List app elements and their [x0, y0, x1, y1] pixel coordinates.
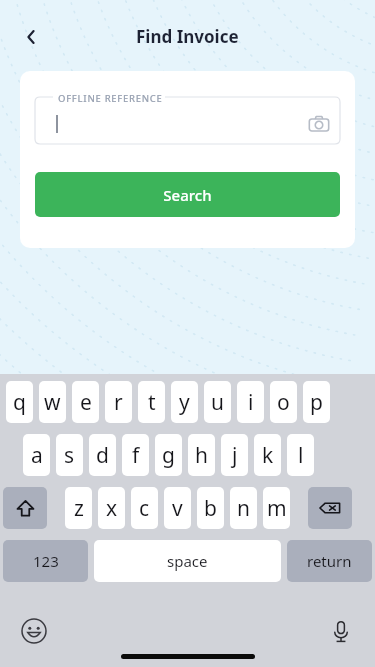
- button[interactable]: a: [23, 434, 50, 476]
- button[interactable]: i: [237, 381, 264, 423]
- staticText: u: [211, 388, 224, 417]
- button[interactable]: r: [105, 381, 132, 423]
- button[interactable]: m: [263, 487, 290, 529]
- staticText: Search: [163, 185, 212, 205]
- staticText: d: [96, 441, 109, 470]
- staticText: 123: [33, 551, 59, 571]
- button[interactable]: y: [171, 381, 198, 423]
- staticText: v: [172, 494, 183, 523]
- button[interactable]: x: [98, 487, 125, 529]
- staticText: a: [31, 441, 43, 470]
- button[interactable]: Search: [35, 172, 340, 217]
- staticText: z: [74, 494, 84, 523]
- button[interactable]: z: [65, 487, 92, 529]
- button[interactable]: d: [89, 434, 116, 476]
- staticText: p: [310, 388, 323, 417]
- button[interactable]: v: [164, 487, 191, 529]
- button[interactable]: l: [287, 434, 314, 476]
- staticText: s: [64, 441, 75, 470]
- button[interactable]: n: [230, 487, 257, 529]
- button[interactable]: t: [138, 381, 165, 423]
- staticText: f: [132, 441, 140, 470]
- button[interactable]: o: [270, 381, 297, 423]
- button[interactable]: Shift: [3, 487, 47, 529]
- staticText: r: [114, 388, 123, 417]
- button[interactable]: 123: [3, 540, 88, 582]
- staticText: x: [106, 494, 118, 523]
- button[interactable]: return: [287, 540, 372, 582]
- staticText: t: [148, 388, 156, 417]
- button[interactable]: f: [122, 434, 149, 476]
- button[interactable]: g: [155, 434, 182, 476]
- staticText: g: [162, 441, 175, 470]
- staticText: OFFLINE REFERENCE: [58, 92, 163, 105]
- button[interactable]: Back: [12, 17, 52, 57]
- staticText: e: [80, 388, 92, 417]
- staticText: k: [262, 441, 274, 470]
- button[interactable]: h: [188, 434, 215, 476]
- staticText: c: [139, 494, 150, 523]
- staticText: q: [13, 388, 26, 417]
- button[interactable]: q: [6, 381, 33, 423]
- button[interactable]: k: [254, 434, 281, 476]
- button[interactable]: j: [221, 434, 248, 476]
- button[interactable]: w: [39, 381, 66, 423]
- button[interactable]: s: [56, 434, 83, 476]
- staticText: space: [167, 551, 208, 571]
- button[interactable]: Dictate: [321, 611, 361, 651]
- staticText: b: [204, 494, 217, 523]
- button[interactable]: space: [94, 540, 281, 582]
- staticText: o: [277, 388, 290, 417]
- button[interactable]: e: [72, 381, 99, 423]
- staticText: l: [298, 441, 304, 470]
- button[interactable]: c: [131, 487, 158, 529]
- staticText: n: [237, 494, 250, 523]
- staticText: j: [232, 441, 238, 470]
- button[interactable]: Backspace: [308, 487, 352, 529]
- staticText: Find Invoice: [136, 25, 239, 48]
- staticText: y: [179, 388, 190, 417]
- button[interactable]: Scan with camera: [302, 107, 336, 141]
- button[interactable]: Emoji: [14, 611, 54, 651]
- staticText: h: [195, 441, 208, 470]
- button[interactable]: b: [197, 487, 224, 529]
- button[interactable]: u: [204, 381, 231, 423]
- staticText: return: [307, 551, 352, 571]
- button[interactable]: p: [303, 381, 330, 423]
- staticText: m: [267, 494, 287, 523]
- staticText: i: [248, 388, 254, 417]
- staticText: w: [44, 388, 61, 417]
